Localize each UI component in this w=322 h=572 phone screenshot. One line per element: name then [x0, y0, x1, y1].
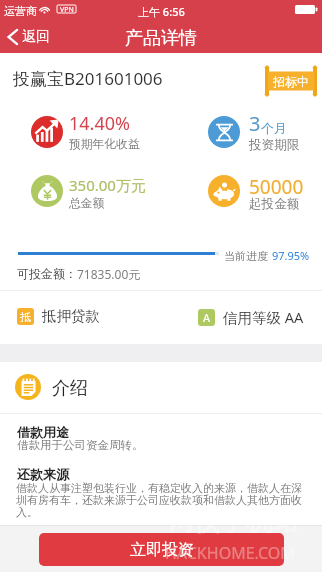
button[interactable]: 抵	[17, 307, 100, 325]
staticText: 50000	[249, 174, 304, 200]
staticText: 运营商	[4, 4, 37, 18]
staticText: 71835.00元	[77, 266, 141, 282]
staticText: 14.40%	[69, 111, 130, 136]
button[interactable]: A	[198, 307, 304, 327]
staticText: 350.00万元	[69, 175, 146, 195]
staticText: 还款来源	[17, 466, 69, 482]
staticText: 总金额	[69, 196, 105, 211]
staticText: 借款人从事注塑包装行业，有稳定收入的来源，借款人在深圳有房有车，还款来源于公司应…	[16, 481, 310, 519]
staticText: 招标中	[273, 74, 309, 89]
staticText: 介绍	[52, 377, 88, 400]
staticText: 当前进度	[224, 249, 268, 263]
button[interactable]: 返回	[0, 20, 60, 53]
staticText: VPN	[60, 5, 74, 13]
staticText: 产品详情	[125, 27, 197, 50]
staticText: HACKHOME.COM	[165, 542, 295, 564]
staticText: 返回	[22, 28, 50, 46]
staticText: 抵	[20, 310, 31, 324]
staticText: 网侠手机站	[168, 505, 298, 538]
staticText: 可投金额：	[17, 266, 77, 281]
staticText: 97.95%	[272, 248, 310, 263]
staticText: 上午 6:56	[138, 4, 185, 19]
staticText: 投资期限	[249, 137, 300, 153]
staticText: 起投金额	[249, 196, 300, 212]
staticText: 预期年化收益	[69, 137, 140, 152]
staticText: 借款用于公司资金周转。	[17, 438, 144, 452]
staticText: 个月	[261, 120, 287, 136]
staticText: A	[203, 310, 211, 325]
staticText: 3	[249, 110, 261, 137]
staticText: 信用等级 AA	[223, 307, 304, 327]
staticText: 立即投资	[130, 540, 194, 560]
staticText: 抵押贷款	[42, 307, 100, 325]
button[interactable]: 立即投资	[39, 533, 284, 566]
staticText: 投赢宝B201601006	[13, 67, 163, 90]
staticText: 借款用途	[17, 424, 69, 440]
